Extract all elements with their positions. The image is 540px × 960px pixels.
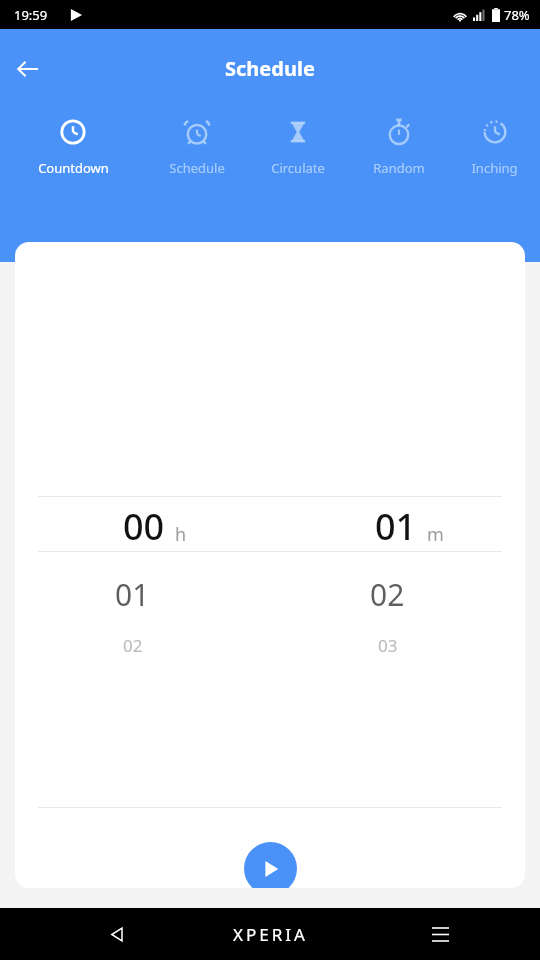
staticText: 03 [378,634,398,657]
staticText: 78% [504,6,530,24]
button[interactable]: Back [8,49,48,89]
button[interactable]: Menu [418,912,462,956]
button[interactable]: Back [95,912,139,956]
staticText: 01 [115,574,150,615]
staticText: Countdown [38,159,109,177]
staticText: 19:59 [14,6,48,24]
staticText: Inching [471,159,518,177]
staticText: 02 [370,574,405,615]
button[interactable]: Schedule [146,116,247,179]
staticText: m [427,522,444,547]
staticText: 01 [375,502,417,551]
staticText: h [175,522,187,547]
button[interactable]: Circulate [247,116,348,179]
button[interactable]: Countdown [0,116,146,179]
staticText: Random [373,159,425,177]
staticText: Schedule [169,159,225,177]
button[interactable]: Start [244,842,297,888]
staticText: Schedule [225,55,315,82]
staticText: XPERIA [233,923,308,946]
button[interactable]: Inching [449,116,540,179]
button[interactable]: 00 [15,496,270,545]
staticText: Circulate [271,159,325,177]
button[interactable]: Random [348,116,449,179]
staticText: 00 [123,502,165,551]
staticText: 02 [123,634,143,657]
button[interactable]: 01 [270,496,525,545]
